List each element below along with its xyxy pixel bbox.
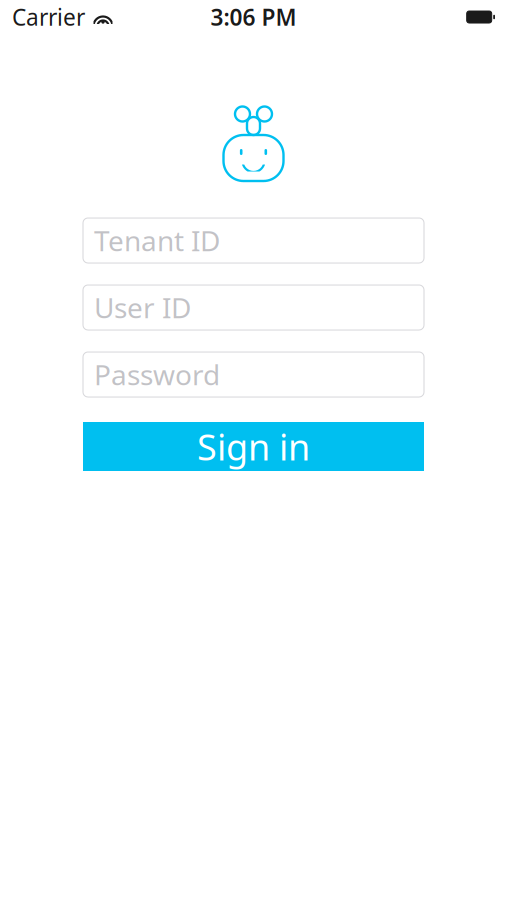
staticText: Tenant ID xyxy=(94,222,220,259)
button[interactable]: Sign in xyxy=(83,422,424,471)
button[interactable]: Tenant ID xyxy=(83,218,424,263)
staticText: Carrier xyxy=(12,2,85,32)
button[interactable]: Password xyxy=(83,352,424,397)
staticText: Password xyxy=(94,356,220,393)
staticText: 3:06 PM xyxy=(210,2,296,32)
button[interactable]: User ID xyxy=(83,285,424,330)
staticText: Sign in xyxy=(197,423,310,470)
staticText: User ID xyxy=(94,289,191,326)
